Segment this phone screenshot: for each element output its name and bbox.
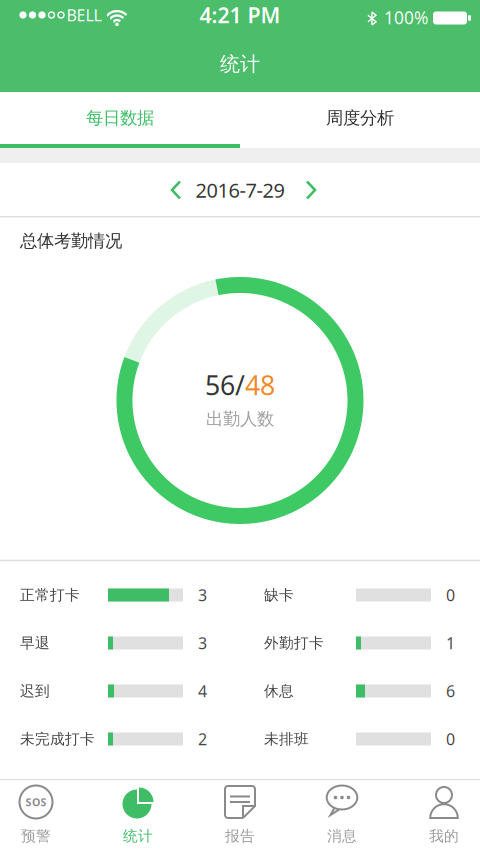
staticText: 缺卡 [264, 586, 294, 604]
staticText: 0 [446, 584, 455, 606]
staticText: 3 [198, 632, 207, 654]
staticText: 消息 [327, 827, 357, 845]
staticText: 2 [198, 728, 207, 750]
staticText: 我的 [429, 827, 459, 845]
staticText: 统计 [220, 52, 260, 76]
button[interactable]: 我的 [408, 782, 480, 848]
staticText: 周度分析 [326, 107, 394, 129]
staticText: 预警 [21, 827, 51, 845]
staticText: 未完成打卡 [20, 730, 95, 748]
staticText: 早退 [20, 634, 50, 652]
staticText: 出勤人数 [206, 408, 274, 430]
staticText: 4:21 PM [199, 1, 280, 29]
staticText: BELL [66, 4, 101, 26]
button[interactable]: 报告 [204, 782, 276, 848]
button[interactable]: 周度分析 [240, 92, 480, 144]
staticText: 统计 [123, 827, 153, 845]
button[interactable]: 消息 [306, 782, 378, 848]
staticText: 每日数据 [86, 107, 154, 129]
staticText: 48 [245, 367, 275, 403]
staticText: 迟到 [20, 682, 50, 700]
button[interactable]: SOS [0, 782, 72, 848]
staticText: 未排班 [264, 730, 309, 748]
staticText: 56/ [205, 367, 245, 403]
button[interactable]: 统计 [102, 782, 174, 848]
staticText: 1 [446, 632, 455, 654]
button[interactable] [154, 168, 198, 212]
staticText: 4 [198, 680, 207, 702]
staticText: 总体考勤情况 [20, 230, 122, 252]
staticText: 报告 [225, 827, 255, 845]
button[interactable]: 每日数据 [0, 92, 240, 144]
button[interactable] [289, 168, 333, 212]
staticText: 0 [446, 728, 455, 750]
staticText: 2016-7-29 [195, 177, 284, 203]
staticText: 休息 [264, 682, 294, 700]
staticText: 100% [384, 6, 428, 29]
staticText: SOS [25, 795, 47, 809]
staticText: 外勤打卡 [264, 634, 324, 652]
staticText: 6 [446, 680, 455, 702]
staticText: 正常打卡 [20, 586, 80, 604]
staticText: 3 [198, 584, 207, 606]
